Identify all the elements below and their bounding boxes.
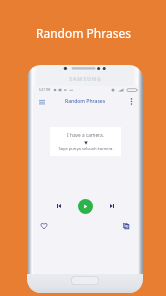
button[interactable]: Favorite (38, 220, 49, 231)
staticText: Random Phrases (36, 25, 131, 41)
button[interactable]: More options (126, 96, 137, 107)
button[interactable]: Previous (53, 200, 64, 211)
button[interactable]: Home (71, 276, 99, 285)
button[interactable]: Copy (120, 220, 131, 231)
button[interactable]: Navigation menu (36, 96, 47, 107)
staticText: I have a camera. (67, 132, 104, 139)
staticText: 6:27 PM (39, 88, 51, 92)
button[interactable]: Next (106, 200, 117, 211)
staticText: Random Phrases (65, 98, 106, 105)
staticText: Saya punya sebuah kamera. (58, 146, 114, 152)
staticText: SAMSUNG (69, 75, 102, 82)
button[interactable]: Play (78, 199, 93, 214)
button[interactable]: I have a camera. (50, 127, 121, 156)
